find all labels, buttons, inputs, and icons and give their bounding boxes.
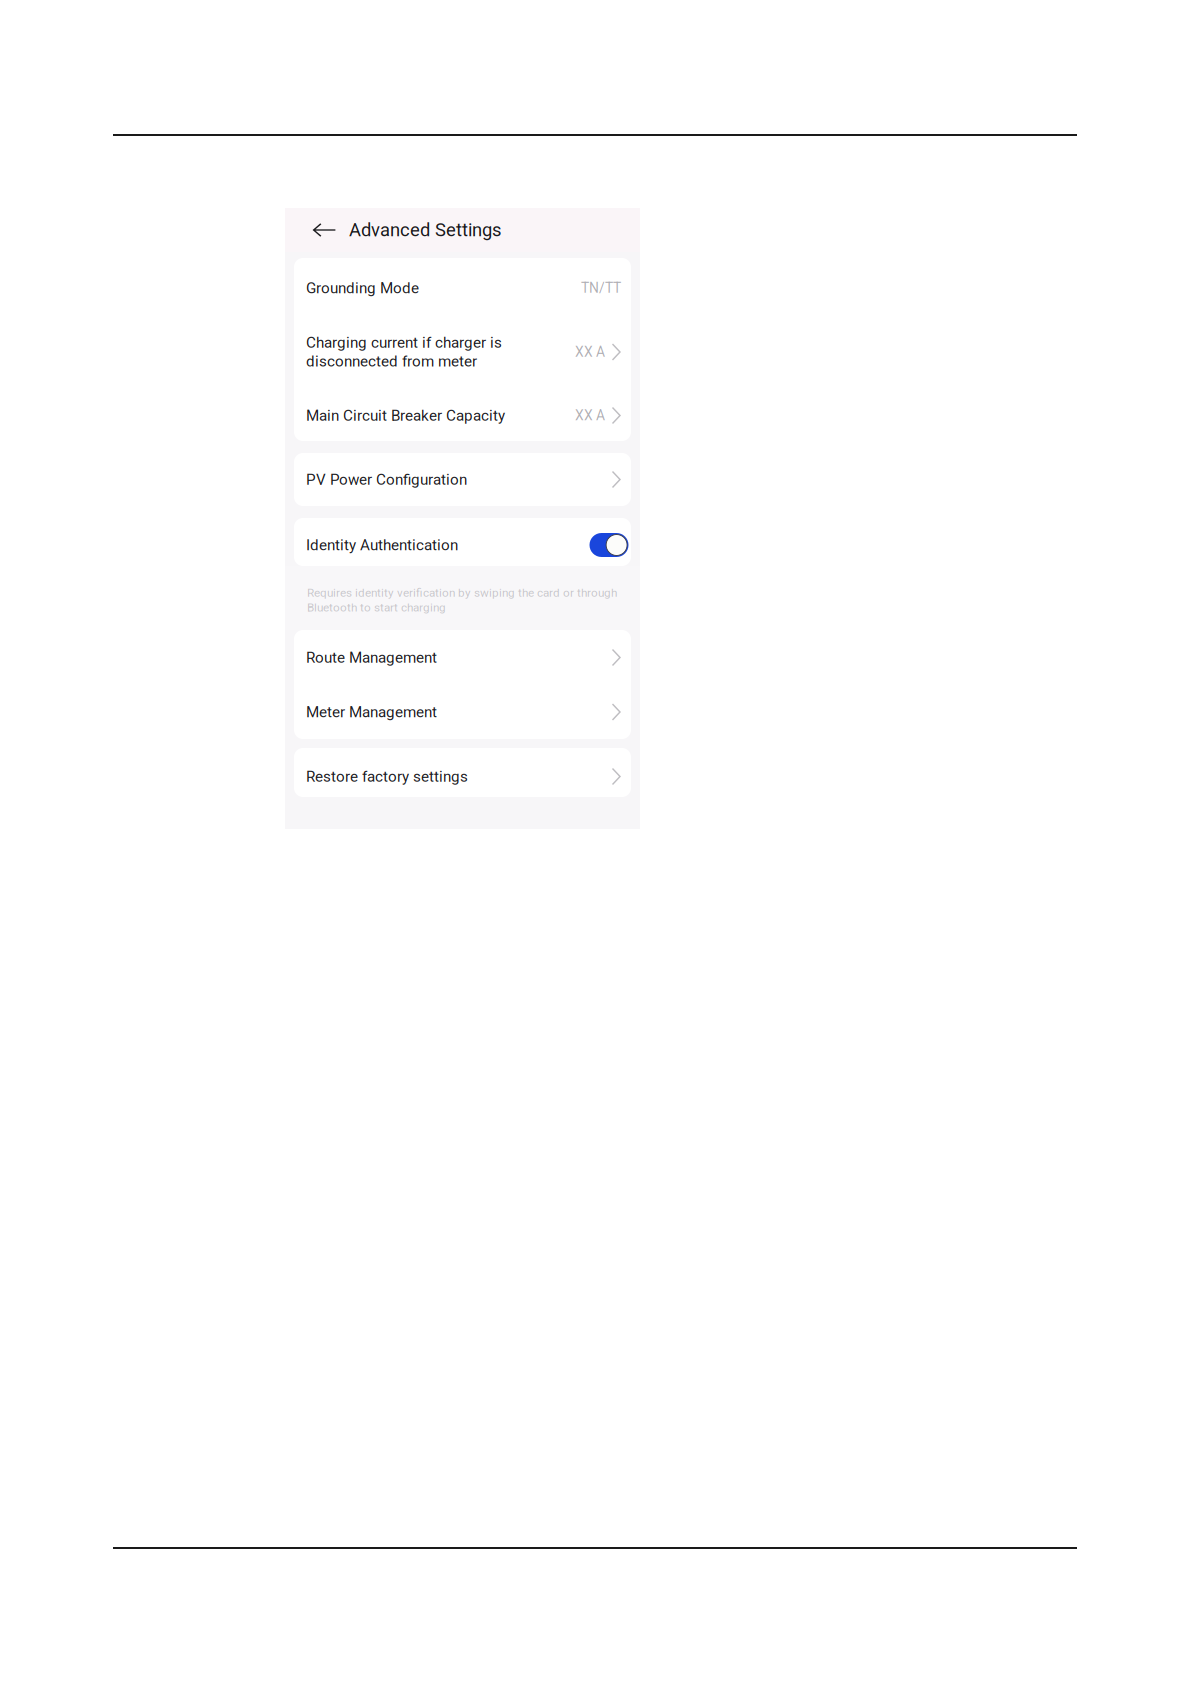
button[interactable]: PV Power Configuration xyxy=(294,453,631,506)
staticText: disconnected from meter xyxy=(306,352,477,370)
button[interactable]: Main Circuit Breaker Capacity xyxy=(294,386,631,441)
staticText: Meter Management xyxy=(306,703,437,721)
staticText: XX A xyxy=(575,344,605,360)
staticText: Identity Authentication xyxy=(306,536,458,554)
staticText: Grounding Mode xyxy=(306,279,419,297)
staticText: Requires identity verification by swipin… xyxy=(307,586,617,600)
staticText: Main Circuit Breaker Capacity xyxy=(306,407,505,424)
button[interactable]: Identity Authentication xyxy=(294,518,631,566)
staticText: PV Power Configuration xyxy=(306,471,467,488)
staticText: XX A xyxy=(575,407,605,424)
button[interactable]: Grounding Mode xyxy=(294,258,631,318)
staticText: Route Management xyxy=(306,649,437,666)
button[interactable]: Back xyxy=(285,208,342,252)
button[interactable]: Route Management xyxy=(294,630,631,685)
staticText: Restore factory settings xyxy=(306,768,468,785)
button[interactable]: Charging current if charger is xyxy=(294,318,631,386)
staticText: TN/TT xyxy=(581,280,621,296)
button[interactable]: Restore factory settings xyxy=(294,748,631,797)
button[interactable]: Meter Management xyxy=(294,685,631,739)
staticText: Advanced Settings xyxy=(349,219,501,241)
staticText: Bluetooth to start charging xyxy=(307,600,446,614)
staticText: Charging current if charger is xyxy=(306,334,502,351)
